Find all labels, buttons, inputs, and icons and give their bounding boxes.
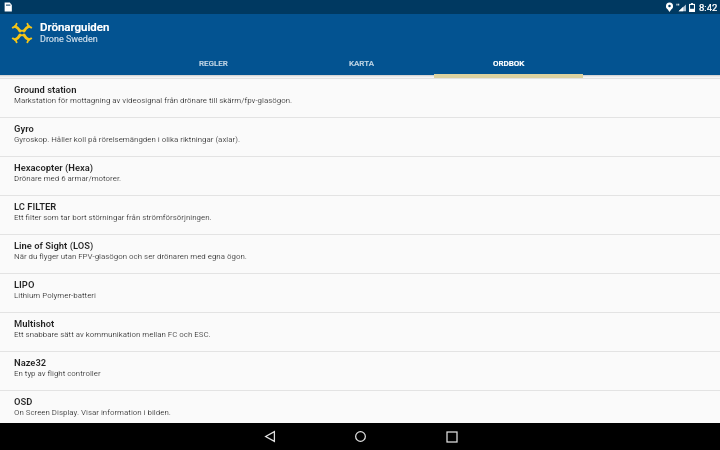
staticText: Lithium Polymer-batteri [14, 291, 96, 300]
staticText: Hexacopter (Hexa) [14, 162, 94, 173]
staticText: Ground station [14, 84, 77, 95]
button[interactable]: ORDBOK [435, 51, 583, 75]
staticText: Markstation för mottagning av videosigna… [14, 96, 293, 105]
button[interactable]: LC FILTER [0, 196, 720, 235]
button[interactable]: Naze32 [0, 352, 720, 391]
staticText: Drone Sweden [40, 34, 98, 45]
button[interactable]: OSD [0, 391, 720, 423]
button[interactable]: GPS [0, 75, 720, 79]
staticText: Gyroskop. Håller koll på rörelsemängden … [14, 135, 241, 144]
button[interactable]: Hexacopter (Hexa) [0, 157, 720, 196]
staticText: Line of Sight (LOS) [14, 240, 94, 251]
staticText: När du flyger utan FPV-glasögon och ser … [14, 252, 247, 261]
staticText: On Screen Display. Visar information i b… [14, 408, 171, 417]
staticText: LIPO [14, 279, 35, 290]
staticText: Multishot [14, 318, 55, 329]
staticText: En typ av flight controller [14, 369, 101, 378]
staticText: Gyro [14, 123, 34, 134]
button[interactable]: KARTA [287, 51, 435, 75]
button[interactable]: Line of Sight (LOS) [0, 235, 720, 274]
staticText: Drönarguiden [40, 20, 110, 33]
button[interactable]: REGLER [139, 51, 287, 75]
staticText: Drönare med 6 armar/motorer. [14, 174, 122, 183]
staticText: 8:42 [699, 2, 718, 13]
button[interactable]: Gyro [0, 118, 720, 157]
staticText: ORDBOK [493, 59, 525, 68]
staticText: KARTA [349, 59, 374, 68]
staticText: REGLER [199, 59, 228, 68]
staticText: OSD [14, 396, 33, 407]
button[interactable]: Ground station [0, 79, 720, 118]
staticText: Ett snabbare sätt av kommunikation mella… [14, 330, 211, 339]
staticText: Ett filter som tar bort störningar från … [14, 213, 212, 222]
button[interactable]: Back [224, 423, 315, 450]
button[interactable]: Home [315, 423, 406, 450]
staticText: LC FILTER [14, 201, 57, 212]
button[interactable]: LIPO [0, 274, 720, 313]
button[interactable]: Recent apps [406, 423, 497, 450]
staticText: Naze32 [14, 357, 47, 368]
button[interactable]: Multishot [0, 313, 720, 352]
